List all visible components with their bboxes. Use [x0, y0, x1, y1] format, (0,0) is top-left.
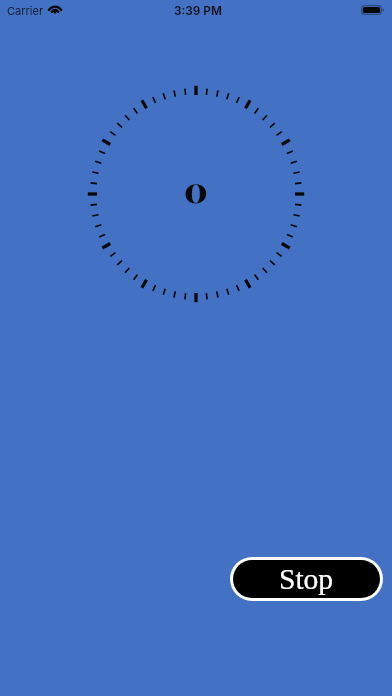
- staticText: 3:39 PM: [174, 4, 222, 18]
- button[interactable]: Stop: [233, 560, 380, 598]
- staticText: Carrier: [7, 4, 44, 17]
- other: Battery full: [361, 5, 384, 15]
- staticText: Stop: [279, 563, 334, 596]
- other: Wi-Fi signal: [48, 4, 62, 14]
- staticText: 0: [184, 165, 208, 212]
- other: Stopwatch dial showing 0 seconds: [86, 84, 306, 304]
